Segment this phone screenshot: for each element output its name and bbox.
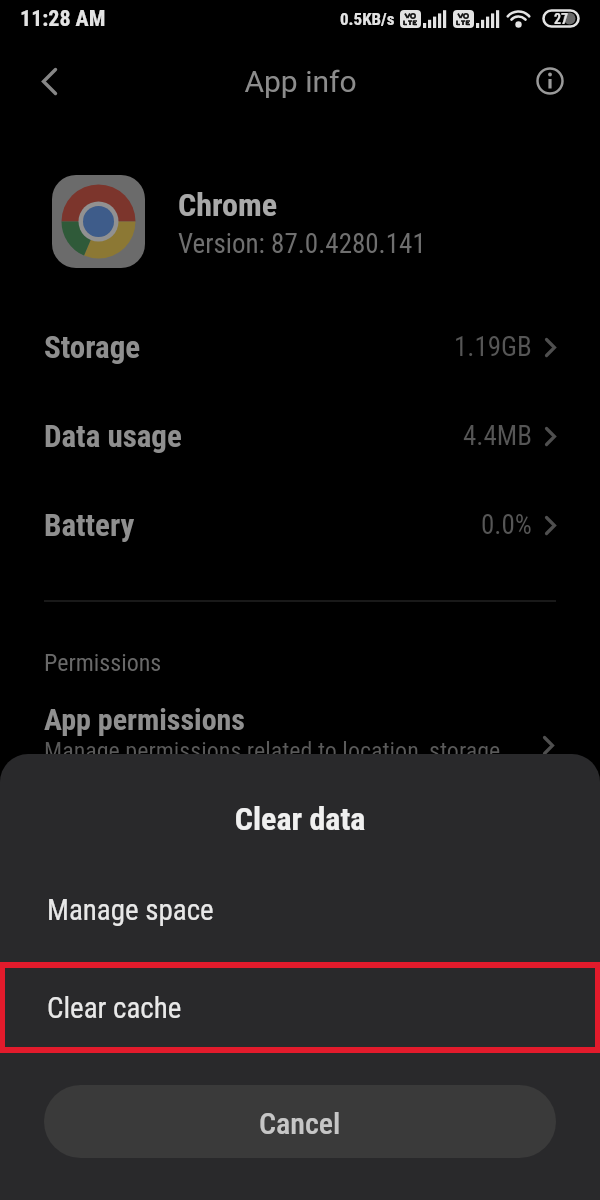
staticText: 1.19GB bbox=[454, 331, 532, 363]
staticText: Manage permissions related to location, … bbox=[44, 737, 501, 765]
staticText: 27 bbox=[554, 11, 569, 27]
staticText: 0.0% bbox=[481, 509, 532, 541]
button[interactable]: Clear cache bbox=[0, 972, 600, 1044]
staticText: Manage space bbox=[47, 893, 214, 927]
staticText: Storage bbox=[44, 329, 141, 365]
staticText: Clear cache bbox=[47, 991, 182, 1025]
staticText: App permissions bbox=[44, 702, 245, 737]
staticText: App info bbox=[244, 64, 357, 99]
staticText: 11:28 AM bbox=[20, 6, 106, 32]
button[interactable]: Storage bbox=[44, 303, 556, 391]
button[interactable]: Cancel bbox=[44, 1085, 556, 1158]
staticText: Permissions bbox=[44, 649, 162, 677]
button[interactable] bbox=[532, 63, 568, 99]
staticText: Battery bbox=[44, 507, 135, 543]
staticText: Version: 87.0.4280.141 bbox=[178, 228, 426, 260]
staticText: Data usage bbox=[44, 418, 182, 454]
button[interactable] bbox=[28, 60, 70, 102]
button[interactable]: Battery bbox=[44, 481, 556, 569]
staticText: Chrome bbox=[178, 186, 278, 224]
staticText: Cancel bbox=[259, 1106, 341, 1141]
staticText: 0.5KB/s bbox=[340, 9, 395, 29]
button[interactable]: Manage space bbox=[0, 874, 600, 946]
staticText: Clear data bbox=[0, 800, 600, 838]
button[interactable]: Data usage bbox=[44, 392, 556, 480]
staticText: 4.4MB bbox=[463, 420, 532, 452]
